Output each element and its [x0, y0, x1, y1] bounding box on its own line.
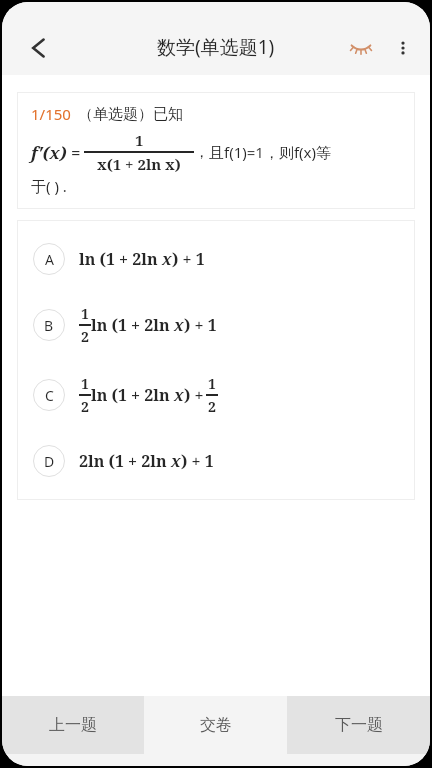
staticText: ， [194, 143, 209, 162]
button[interactable]: A [17, 228, 415, 290]
button[interactable]: Hide answers [340, 27, 382, 69]
button[interactable]: 交卷 [144, 696, 287, 754]
staticText: 于( ) . [31, 176, 67, 196]
button[interactable]: More options [382, 27, 424, 69]
staticText: （单选题）已知 [78, 105, 183, 124]
button[interactable]: 下一题 [287, 696, 430, 754]
staticText: 1/150 [31, 104, 71, 124]
staticText: x(1 + 2ln x) [97, 154, 181, 174]
staticText: 1 [81, 374, 89, 393]
staticText: B [44, 316, 54, 335]
staticText: x [171, 450, 181, 472]
staticText: 2ln (1 + 2ln [79, 450, 171, 472]
staticText: ln (1 + 2ln [91, 384, 174, 406]
staticText: 1 [135, 130, 144, 150]
staticText: x [174, 384, 184, 406]
staticText: 2 [208, 397, 216, 416]
staticText: ln (1 + 2ln [91, 314, 174, 336]
staticText: 交卷 [200, 715, 232, 735]
staticText: D [44, 452, 55, 471]
button[interactable]: D [17, 430, 415, 492]
staticText: 数学(单选题1) [157, 34, 275, 60]
staticText: f′(x) = [31, 141, 81, 164]
staticText: x [162, 248, 172, 270]
button[interactable]: B [17, 290, 415, 360]
button[interactable]: Back [17, 27, 59, 69]
staticText: 上一题 [49, 715, 97, 735]
staticText: ) + 1 [184, 314, 217, 336]
staticText: 下一题 [335, 715, 383, 735]
staticText: ln (1 + 2ln [79, 248, 162, 270]
staticText: C [45, 386, 54, 405]
staticText: 2 [81, 397, 89, 416]
staticText: x [174, 314, 184, 336]
staticText: A [45, 250, 54, 269]
staticText: ) + [184, 384, 204, 406]
staticText: ) + 1 [172, 248, 205, 270]
staticText: 1 [208, 374, 216, 393]
staticText: 1 [81, 304, 89, 323]
button[interactable]: C [17, 360, 415, 430]
staticText: 且f(1)=1，则f(x)等 [209, 142, 331, 162]
staticText: 2 [81, 327, 89, 346]
button[interactable]: 上一题 [2, 696, 144, 754]
staticText: ) + 1 [181, 450, 214, 472]
